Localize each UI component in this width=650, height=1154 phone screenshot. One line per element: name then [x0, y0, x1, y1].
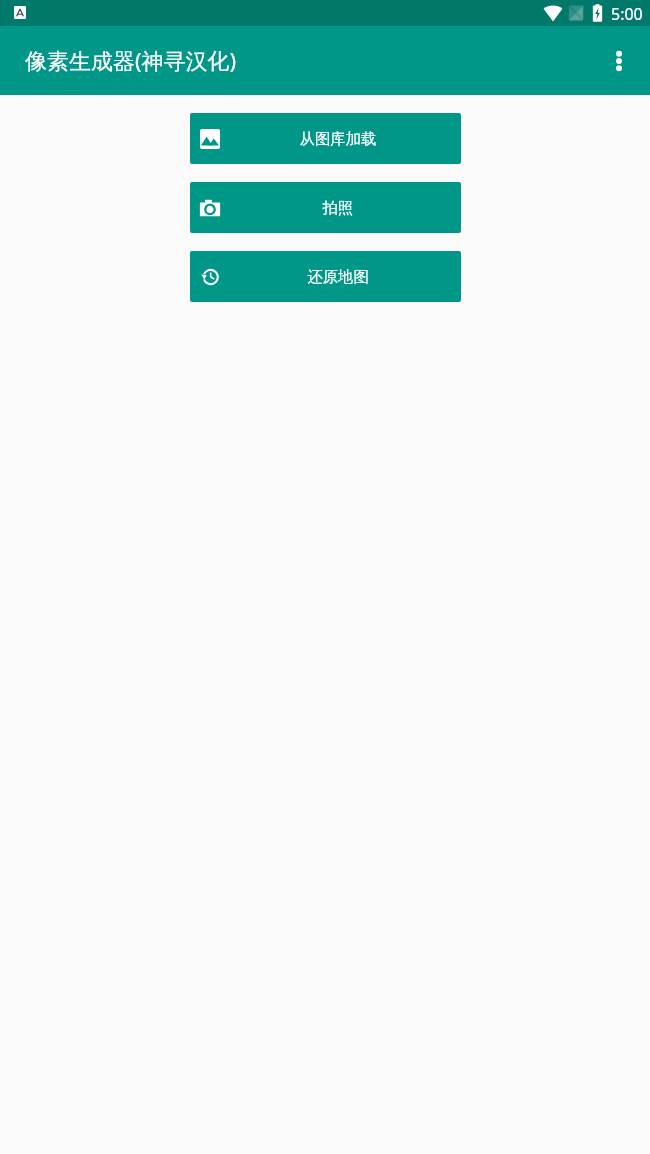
- button[interactable]: More options: [595, 37, 643, 85]
- button[interactable]: 拍照: [190, 182, 461, 233]
- staticText: 5:00: [611, 3, 643, 25]
- staticText: 拍照: [221, 198, 455, 217]
- staticText: 像素生成器(神寻汉化): [25, 45, 237, 75]
- button[interactable]: 还原地图: [190, 251, 461, 302]
- staticText: 还原地图: [221, 267, 455, 286]
- staticText: 从图库加载: [221, 129, 455, 148]
- button[interactable]: 从图库加载: [190, 113, 461, 164]
